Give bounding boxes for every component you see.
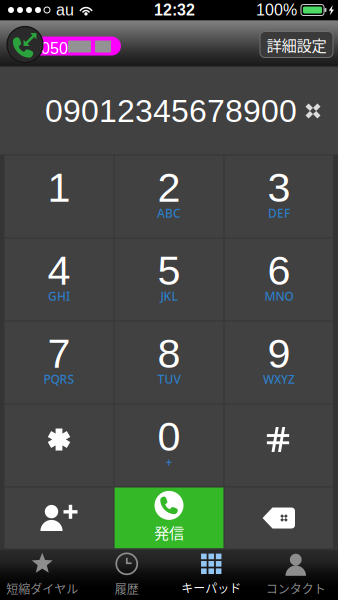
staticText: 2 (157, 164, 180, 211)
button[interactable] (224, 404, 333, 486)
staticText: MNO (264, 288, 293, 304)
staticText: TUV (157, 371, 180, 387)
button[interactable]: 5 (114, 238, 223, 320)
staticText: コンタクト (266, 580, 326, 597)
staticText: ABC (157, 205, 181, 221)
staticText: 12:32 (154, 1, 195, 19)
staticText: 1 (47, 164, 70, 211)
button[interactable] (4, 404, 113, 486)
button[interactable]: 履歴 (84, 549, 169, 600)
button[interactable]: Add contact (4, 487, 113, 548)
button[interactable]: 詳細設定 (260, 31, 333, 57)
staticText: WXYZ (263, 371, 295, 387)
staticText: キーパッド (181, 579, 241, 596)
button[interactable]: 2 (114, 155, 223, 237)
staticText: 09012345678900 (45, 93, 297, 129)
button[interactable]: 6 (224, 238, 333, 320)
button[interactable]: 発信 (114, 487, 223, 548)
staticText: GHI (48, 288, 70, 304)
staticText: 050- (41, 39, 73, 57)
staticText: 7 (47, 330, 70, 377)
staticText: PQRS (43, 371, 74, 387)
staticText: 5 (157, 247, 180, 294)
staticText: 8 (157, 330, 180, 377)
staticText: 3 (267, 164, 290, 211)
staticText: DEF (268, 205, 290, 221)
staticText: 履歴 (115, 580, 139, 597)
button[interactable]: 短縮ダイヤル (0, 549, 84, 600)
button[interactable]: Clear (299, 94, 327, 128)
staticText: 0 (157, 413, 180, 460)
button[interactable]: キーパッド (169, 549, 253, 600)
staticText: + (165, 454, 172, 470)
staticText: JKL (160, 288, 177, 304)
button[interactable]: 050- (10, 36, 121, 55)
button[interactable]: コンタクト (253, 549, 338, 600)
button[interactable]: Call mode (5, 24, 45, 64)
button[interactable]: 7 (4, 321, 113, 403)
button[interactable]: 0 (114, 404, 223, 486)
button[interactable]: 8 (114, 321, 223, 403)
button[interactable]: Delete (224, 487, 333, 548)
staticText: au (56, 1, 74, 19)
button[interactable]: 1 (4, 155, 113, 237)
staticText: 詳細設定 (266, 33, 326, 56)
staticText: 4 (47, 247, 70, 294)
button[interactable]: 3 (224, 155, 333, 237)
button[interactable]: 4 (4, 238, 113, 320)
staticText: 9 (267, 330, 290, 377)
staticText: 100% (256, 1, 297, 19)
staticText: 発信 (154, 521, 184, 543)
button[interactable]: 9 (224, 321, 333, 403)
staticText: 6 (267, 247, 290, 294)
staticText: 短縮ダイヤル (6, 580, 78, 597)
